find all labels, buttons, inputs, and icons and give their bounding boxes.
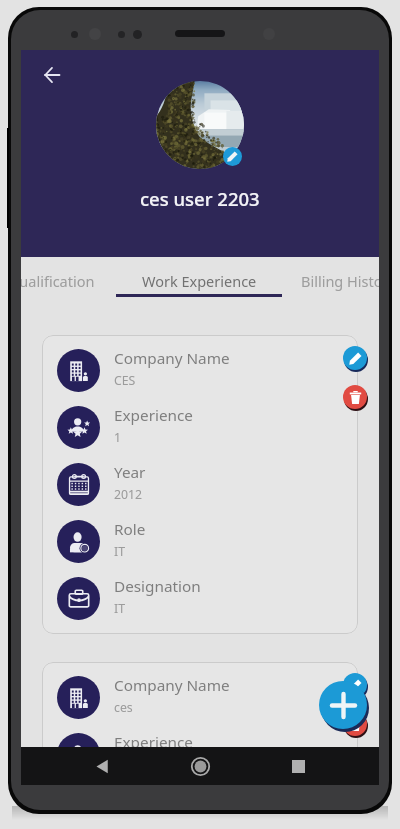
button[interactable]: Delete: [343, 385, 367, 409]
button[interactable]: Work Experience: [116, 261, 282, 300]
button[interactable]: Experience: [57, 399, 358, 456]
button[interactable]: Experience: [57, 726, 358, 747]
staticText: Work Experience: [142, 271, 257, 291]
staticText: ces: [114, 699, 133, 716]
button[interactable]: Billing History: [281, 261, 379, 300]
button[interactable]: Recent apps: [281, 749, 315, 783]
button[interactable]: Back: [33, 56, 71, 94]
staticText: Experience: [114, 732, 193, 747]
staticText: Billing History: [301, 271, 379, 291]
staticText: 2012: [114, 486, 143, 503]
button[interactable]: Qualification: [21, 261, 118, 300]
button[interactable]: Role: [57, 513, 358, 570]
button[interactable]: Change profile picture: [223, 147, 242, 166]
staticText: IT: [114, 600, 126, 617]
staticText: Company Name: [114, 348, 230, 369]
button[interactable]: Edit: [343, 673, 367, 697]
staticText: Experience: [114, 405, 193, 426]
staticText: CES: [114, 372, 136, 389]
staticText: Year: [114, 462, 146, 483]
button[interactable]: Company Name: [57, 669, 358, 726]
button[interactable]: Home: [183, 749, 217, 783]
button[interactable]: Back: [85, 749, 119, 783]
staticText: Role: [114, 519, 146, 540]
staticText: IT: [114, 543, 126, 560]
button[interactable]: Edit: [343, 346, 367, 370]
staticText: Designation: [114, 576, 201, 597]
button[interactable]: Designation: [57, 570, 358, 627]
button[interactable]: Company Name: [57, 342, 358, 399]
button[interactable]: Delete: [343, 712, 367, 736]
staticText: 1: [114, 429, 122, 446]
staticText: ces user 2203: [140, 186, 260, 211]
staticText: Qualification: [21, 271, 95, 291]
button[interactable]: Add work experience: [319, 681, 367, 729]
button[interactable]: Year: [57, 456, 358, 513]
staticText: Company Name: [114, 675, 230, 696]
